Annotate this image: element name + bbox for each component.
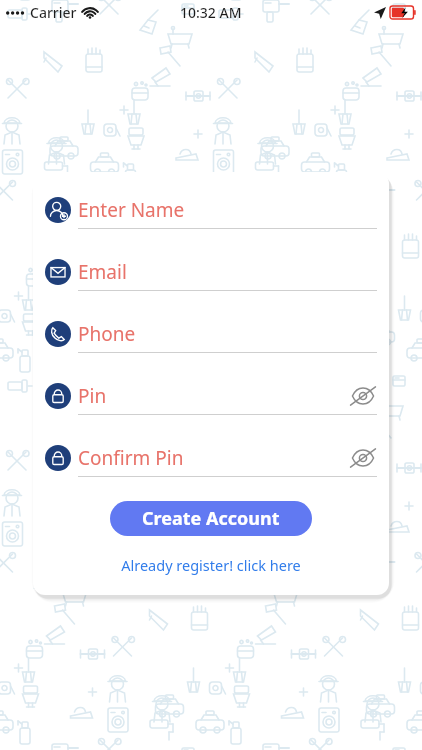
button[interactable]: Phone [45, 318, 377, 353]
button[interactable]: Create Account [110, 501, 312, 536]
staticText: Enter Name [78, 197, 377, 223]
button[interactable]: Show Pin [349, 387, 377, 405]
button[interactable]: Already register! click here [113, 553, 309, 577]
button[interactable]: Confirm Pin [45, 442, 377, 477]
staticText: Confirm Pin [78, 445, 349, 471]
staticText: Already register! click here [121, 555, 301, 575]
staticText: Carrier [30, 3, 77, 22]
staticText: Create Account [142, 506, 280, 531]
button[interactable]: Show Confirm Pin [349, 449, 377, 467]
staticText: Pin [78, 383, 349, 409]
staticText: Email [78, 259, 377, 285]
staticText: Phone [78, 321, 377, 347]
button[interactable]: Email [45, 256, 377, 291]
staticText: 10:32 AM [180, 3, 242, 22]
button[interactable]: Pin [45, 380, 377, 415]
button[interactable]: Enter Name [45, 194, 377, 229]
